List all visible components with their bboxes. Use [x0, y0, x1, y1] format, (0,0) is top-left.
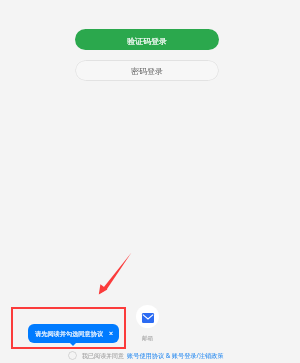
button[interactable]: 验证码登录	[75, 29, 219, 50]
button[interactable]: 邮箱登录	[136, 305, 159, 342]
button[interactable]: 密码登录	[75, 60, 219, 81]
staticText: 我已阅读并同意	[82, 352, 124, 360]
staticText: 密码登录	[131, 66, 163, 76]
button[interactable]: 账号使用协议 & 账号登录/注销政策	[127, 351, 224, 359]
button[interactable]: 请先阅读并勾选同意协议	[28, 324, 119, 343]
staticText: ×	[109, 329, 114, 339]
staticText: 请先阅读并勾选同意协议	[35, 330, 104, 338]
staticText: 邮箱	[142, 335, 153, 342]
button[interactable]: 同意用户协议复选框	[68, 351, 77, 360]
staticText: 验证码登录	[127, 36, 167, 46]
